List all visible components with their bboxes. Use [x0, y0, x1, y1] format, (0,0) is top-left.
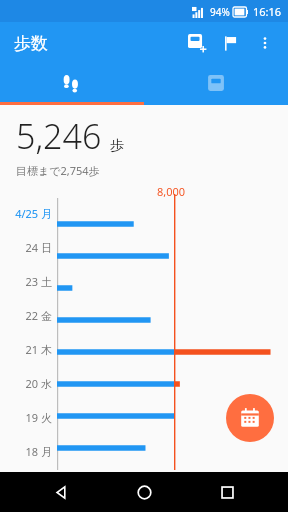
button[interactable]: Home: [122, 472, 166, 512]
staticText: 歩: [110, 137, 124, 155]
staticText: 4/25 月: [0, 206, 52, 221]
button[interactable]: Add weight: [180, 26, 214, 60]
staticText: 18 月: [0, 444, 52, 459]
button[interactable]: More options: [248, 26, 282, 60]
button[interactable]: 19 火: [0, 400, 288, 434]
staticText: 21 木: [0, 342, 52, 357]
staticText: 19 火: [0, 410, 52, 425]
button[interactable]: 22 金: [0, 298, 288, 332]
button[interactable]: Goal flag: [214, 26, 248, 60]
staticText: 16:16: [253, 4, 282, 19]
staticText: 22 金: [0, 308, 52, 323]
button[interactable]: 20 水: [0, 366, 288, 400]
staticText: 94%: [210, 5, 230, 19]
staticText: 目標まで2,754歩: [16, 163, 100, 178]
staticText: 20 水: [0, 376, 52, 391]
button[interactable]: Steps tab: [0, 64, 144, 102]
button[interactable]: Back: [39, 472, 83, 512]
button[interactable]: 21 木: [0, 332, 288, 366]
staticText: 5,246: [16, 113, 102, 159]
staticText: 歩数: [14, 33, 48, 54]
button[interactable]: Recents: [205, 472, 249, 512]
button[interactable]: 4/25 月: [0, 196, 288, 230]
staticText: 23 土: [0, 274, 52, 289]
staticText: 8,000: [157, 184, 186, 199]
staticText: 24 日: [0, 240, 52, 255]
button[interactable]: Calendar: [226, 394, 274, 442]
button[interactable]: Weight tab: [144, 64, 288, 102]
button[interactable]: 18 月: [0, 434, 288, 468]
button[interactable]: 23 土: [0, 264, 288, 298]
button[interactable]: 24 日: [0, 230, 288, 264]
